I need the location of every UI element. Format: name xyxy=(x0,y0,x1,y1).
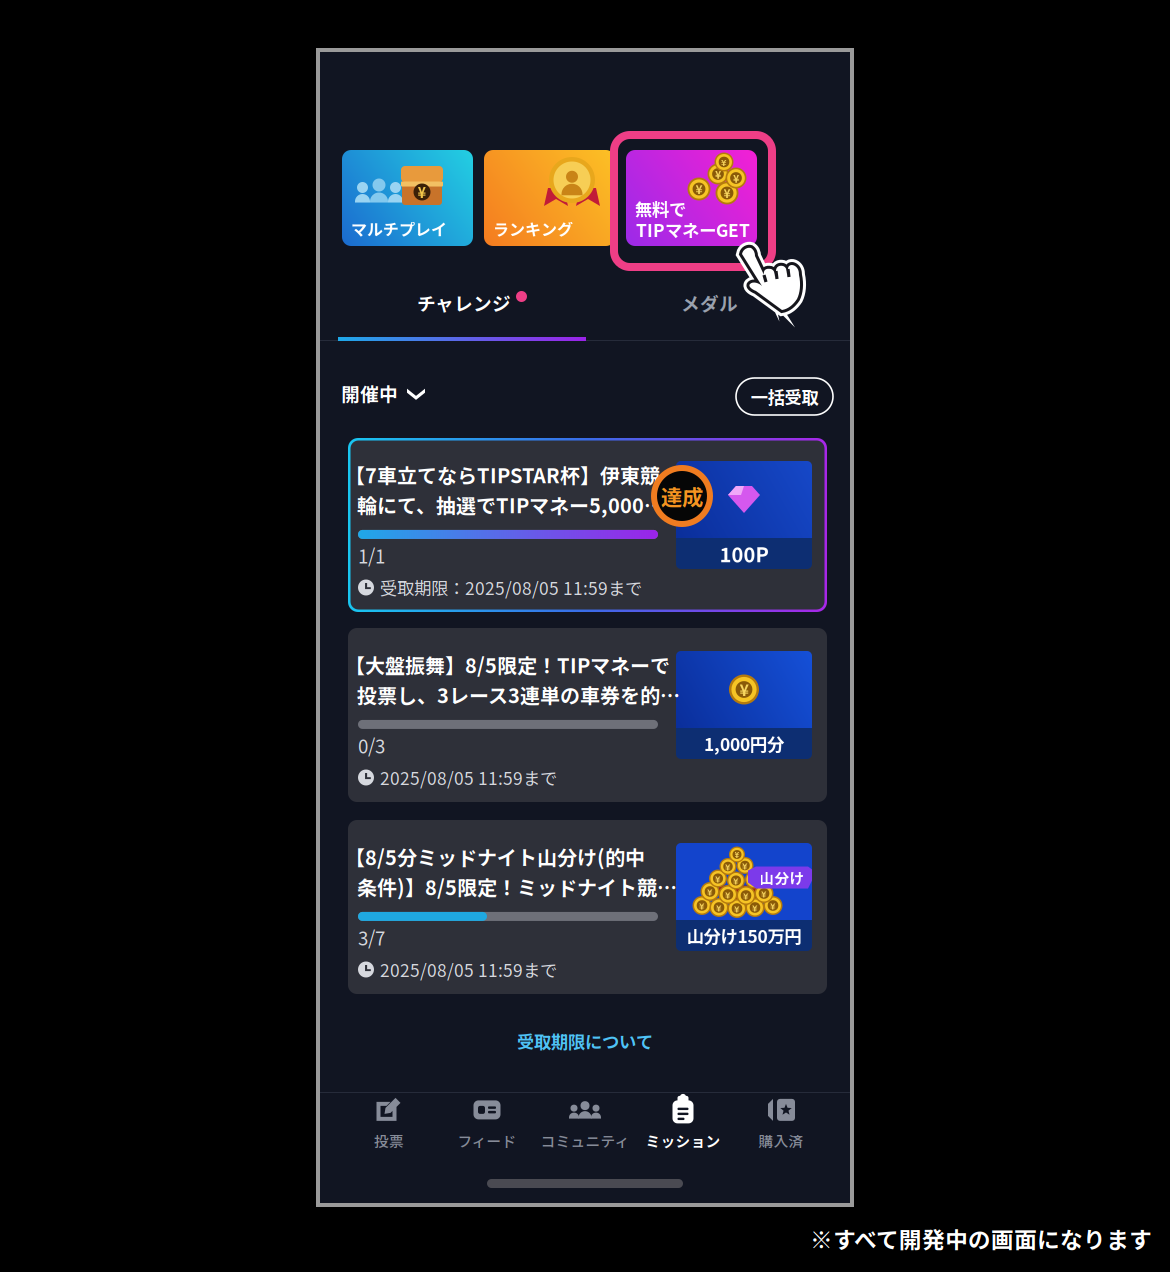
staticText: 3/7 xyxy=(358,924,385,951)
staticText: 開催中 xyxy=(341,379,398,406)
staticText: 一括受取 xyxy=(750,384,818,409)
staticText: ¥ xyxy=(751,873,757,886)
button[interactable]: ¥ xyxy=(348,820,827,994)
staticText: 受取期限：2025/08/05 11:59まで xyxy=(380,575,642,600)
staticText: チャレンジ xyxy=(417,289,511,316)
staticText: ※すべて開発中の画面になります xyxy=(810,1222,1152,1255)
staticText: ¥ xyxy=(707,885,713,898)
staticText: ¥ xyxy=(742,859,748,872)
button[interactable]: 100P xyxy=(348,438,827,612)
staticText: 【7車立てならTIPSTAR杯】伊東競 xyxy=(345,460,660,489)
staticText: コミュニティ xyxy=(540,1130,629,1151)
staticText: マルチプレイ xyxy=(351,217,447,240)
staticText: ¥ xyxy=(715,166,721,182)
button[interactable]: 開催中 xyxy=(341,373,425,413)
staticText: 1/1 xyxy=(358,542,385,569)
button[interactable]: ¥ xyxy=(348,628,827,802)
staticText: 【8/5分ミッドナイト山分け(的中 xyxy=(345,842,645,871)
staticText: 山分け xyxy=(759,867,804,888)
staticText: ¥ xyxy=(725,888,731,901)
button[interactable]: 投票 xyxy=(340,1098,438,1150)
button[interactable]: ¥ xyxy=(342,150,473,246)
button[interactable]: ミッション xyxy=(634,1098,732,1150)
button[interactable]: コミュニティ xyxy=(536,1098,634,1150)
button[interactable]: メダル xyxy=(585,285,850,337)
staticText: ¥ xyxy=(752,901,758,914)
staticText: 輪にて、抽選でTIPマネー5,000… xyxy=(357,490,664,519)
staticText: ¥ xyxy=(695,180,702,198)
staticText: ¥ xyxy=(739,678,748,701)
staticText: 1,000円分 xyxy=(704,731,784,756)
staticText: 100P xyxy=(719,539,768,568)
staticText: ¥ xyxy=(723,184,730,202)
staticText: ¥ xyxy=(734,902,740,915)
staticText: ¥ xyxy=(733,874,739,887)
button[interactable]: 一括受取 xyxy=(736,378,833,415)
staticText: 達成 xyxy=(661,481,703,511)
staticText: ¥ xyxy=(733,170,739,186)
button[interactable]: ランキング xyxy=(484,150,615,246)
button[interactable]: フィード xyxy=(438,1098,536,1150)
staticText: ¥ xyxy=(715,872,721,885)
staticText: ¥ xyxy=(699,899,705,912)
button[interactable]: ¥ xyxy=(626,150,757,246)
staticText: 2025/08/05 11:59まで xyxy=(380,765,557,790)
staticText: ¥ xyxy=(417,181,426,203)
staticText: TIPマネーGET xyxy=(636,217,750,242)
staticText: ミッション xyxy=(645,1130,720,1151)
staticText: ¥ xyxy=(721,155,727,169)
button[interactable]: 受取期限について xyxy=(485,1021,685,1061)
staticText: 0/3 xyxy=(358,732,385,759)
staticText: 【大盤振舞】8/5限定！TIPマネーで xyxy=(345,650,670,679)
button[interactable]: 購入済 xyxy=(732,1098,830,1150)
staticText: ¥ xyxy=(761,887,767,900)
staticText: ランキング xyxy=(493,217,573,240)
staticText: 投票 xyxy=(374,1130,404,1151)
staticText: 条件)】8/5限定！ミッドナイト競… xyxy=(357,872,677,901)
staticText: 2025/08/05 11:59まで xyxy=(380,957,557,982)
staticText: フィード xyxy=(457,1130,516,1151)
staticText: ¥ xyxy=(770,899,776,912)
staticText: メダル xyxy=(681,289,738,316)
staticText: ¥ xyxy=(725,860,731,873)
staticText: 受取期限について xyxy=(517,1028,653,1054)
button[interactable]: チャレンジ xyxy=(320,285,585,337)
staticText: 山分け150万円 xyxy=(686,923,801,948)
staticText: 投票し、3レース3連単の車券を的… xyxy=(357,680,680,709)
staticText: 購入済 xyxy=(758,1130,803,1151)
staticText: ¥ xyxy=(734,849,739,860)
staticText: ¥ xyxy=(743,889,749,902)
staticText: 無料で xyxy=(635,196,686,221)
staticText: ¥ xyxy=(716,901,722,914)
